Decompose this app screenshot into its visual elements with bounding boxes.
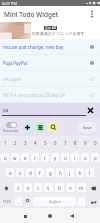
button[interactable]: Enter — [87, 197, 99, 206]
staticText: mouse pad change, new bay — [3, 44, 88, 50]
button[interactable]: Clear text — [86, 106, 95, 115]
staticText: a — [9, 170, 12, 176]
staticText: x — [27, 185, 30, 191]
button[interactable]: English — [33, 197, 76, 206]
staticText: i — [74, 155, 76, 161]
staticText: u — [64, 155, 67, 161]
button[interactable]: MCA 4 sem paid on 20 sep 24 — [0, 87, 100, 103]
button[interactable]: Backspace — [88, 183, 99, 192]
staticText: English — [49, 199, 61, 204]
button[interactable]: Advertisement — [0, 22, 100, 39]
button[interactable]: Emoji — [24, 197, 31, 206]
staticText: Save — [83, 125, 92, 130]
button[interactable]: k — [76, 168, 84, 177]
staticText: j — [69, 170, 71, 176]
button[interactable]: 4 — [30, 136, 40, 149]
staticText: Remainder — [3, 129, 19, 133]
staticText: 5 — [44, 140, 47, 146]
button[interactable]: x — [24, 183, 32, 192]
staticText: n — [69, 185, 72, 191]
button[interactable]: p — [91, 153, 99, 162]
button[interactable]: s — [16, 168, 24, 177]
button[interactable]: z — [14, 183, 22, 192]
staticText: h — [59, 170, 62, 176]
button[interactable]: Recent apps — [20, 211, 30, 221]
button[interactable]: mouse pad change, new bay — [0, 39, 100, 55]
button[interactable]: r — [31, 153, 39, 162]
staticText: v — [47, 185, 50, 191]
button[interactable]: 7 — [60, 136, 70, 149]
button[interactable]: Remainder — [2, 122, 20, 133]
button[interactable]: e — [21, 153, 29, 162]
button[interactable]: 5 — [40, 136, 50, 149]
button[interactable]: t — [41, 153, 49, 162]
staticText: , — [18, 199, 20, 205]
button[interactable]: y — [51, 153, 59, 162]
staticText: Puja PayPal — [3, 60, 88, 66]
button[interactable]: Search — [48, 122, 59, 133]
staticText: g — [49, 170, 52, 176]
staticText: 0 — [94, 140, 97, 146]
staticText: . — [81, 199, 83, 205]
button[interactable]: 2 — [10, 136, 20, 149]
staticText: 3 — [24, 140, 27, 146]
staticText: p — [94, 155, 97, 161]
staticText: Mini Todo Widget — [4, 10, 59, 19]
button[interactable]: Add item — [22, 122, 33, 133]
button[interactable]: More options — [87, 9, 97, 19]
button[interactable]: a4 paper — [0, 71, 100, 87]
button[interactable]: u — [61, 153, 69, 162]
staticText: t — [44, 155, 46, 161]
button[interactable]: , — [15, 197, 22, 206]
button[interactable]: pa — [0, 103, 100, 118]
button[interactable]: j — [66, 168, 74, 177]
staticText: 6 — [54, 140, 57, 146]
button[interactable]: w — [11, 153, 19, 162]
button[interactable]: 0 — [90, 136, 100, 149]
button[interactable]: 1 — [0, 136, 10, 149]
staticText: s — [19, 170, 22, 176]
staticText: r — [34, 155, 36, 161]
staticText: 8 — [74, 140, 77, 146]
button[interactable]: Shift — [1, 183, 12, 192]
button[interactable]: q — [1, 153, 9, 162]
staticText: c — [37, 185, 40, 191]
button[interactable]: 6 — [50, 136, 60, 149]
button[interactable]: ?123 — [0, 194, 14, 208]
button[interactable]: b — [55, 183, 64, 192]
button[interactable]: g — [46, 168, 54, 177]
button[interactable]: Puja PayPal — [0, 55, 100, 71]
staticText: f — [39, 170, 41, 176]
staticText: m — [79, 185, 84, 191]
staticText: e — [24, 155, 27, 161]
button[interactable]: c — [34, 183, 42, 192]
staticText: 7 — [64, 140, 67, 146]
button[interactable]: d — [26, 168, 34, 177]
button[interactable]: v — [44, 183, 53, 192]
button[interactable]: 3 — [20, 136, 30, 149]
staticText: 5:07 PM — [2, 1, 18, 6]
button[interactable]: o — [81, 153, 89, 162]
button[interactable]: 8 — [70, 136, 80, 149]
button[interactable]: l — [86, 168, 94, 177]
button[interactable]: m — [77, 183, 86, 192]
button[interactable]: Save — [78, 122, 97, 133]
button[interactable]: h — [56, 168, 64, 177]
button[interactable]: i — [71, 153, 79, 162]
button[interactable]: . — [78, 197, 85, 206]
button[interactable]: 9 — [80, 136, 90, 149]
button[interactable]: f — [36, 168, 44, 177]
staticText: 日本最高のクリニックを探す — [32, 31, 85, 36]
staticText: o — [84, 155, 87, 161]
staticText: ?123 — [3, 199, 11, 204]
button[interactable]: Back — [67, 211, 77, 221]
button[interactable]: Home — [45, 211, 55, 221]
staticText: 2 — [14, 140, 17, 146]
button[interactable]: a — [6, 168, 14, 177]
staticText: 4 — [34, 140, 37, 146]
staticText: q — [4, 155, 7, 161]
staticText: a4 paper — [3, 76, 88, 82]
button[interactable]: n — [66, 183, 75, 192]
staticText: k — [79, 170, 82, 176]
button[interactable]: Categories — [35, 122, 46, 133]
